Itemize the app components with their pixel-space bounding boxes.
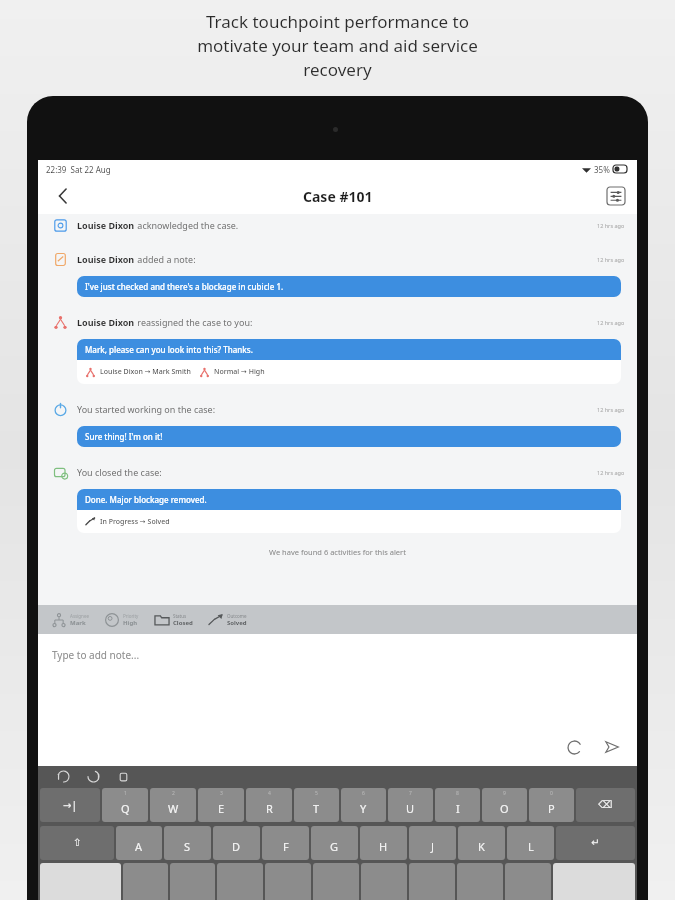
staticText: ↵ (591, 837, 600, 849)
button[interactable]: Mark, please can you look into this? Tha… (77, 339, 621, 384)
button[interactable]: 1 (102, 788, 148, 822)
staticText: 35% (594, 164, 610, 175)
button[interactable]: Sure thing! I'm on it! (77, 426, 621, 447)
staticText: 5 (315, 790, 318, 797)
button[interactable]: 6 (341, 788, 386, 822)
staticText: You closed the case: (77, 466, 162, 478)
staticText: added a note: (135, 253, 196, 265)
button[interactable]: K (458, 826, 505, 860)
staticText: W (168, 801, 179, 816)
staticText: A (135, 839, 143, 854)
staticText: We have found 6 activities for this aler… (38, 547, 637, 557)
button[interactable]: F (262, 826, 309, 860)
button[interactable]: Undo (563, 736, 585, 758)
button[interactable]: D (213, 826, 260, 860)
button[interactable]: L (507, 826, 554, 860)
staticText: Mark, please can you look into this? Tha… (85, 344, 253, 355)
button[interactable] (40, 863, 121, 900)
staticText: 2 (172, 790, 175, 797)
staticText: 12 hrs ago (597, 319, 625, 326)
button[interactable]: Send (601, 736, 623, 758)
staticText: 8 (456, 790, 459, 797)
button[interactable]: Louise Dixon (52, 214, 625, 236)
button[interactable]: 5 (294, 788, 339, 822)
button[interactable]: undo (54, 767, 72, 785)
button[interactable]: H (360, 826, 407, 860)
staticText: Priority (123, 613, 139, 619)
staticText: 3 (220, 790, 223, 797)
staticText: ⇧ (73, 837, 82, 849)
staticText: Closed (173, 619, 193, 627)
button[interactable]: 7 (388, 788, 433, 822)
button[interactable]: 9 (482, 788, 527, 822)
button[interactable]: Back (48, 181, 78, 211)
staticText: 12 hrs ago (597, 469, 625, 476)
staticText: acknowledged the case. (135, 219, 239, 231)
staticText: →| (63, 798, 77, 812)
button[interactable]: Status (153, 611, 193, 628)
staticText: Outcome (227, 613, 247, 619)
staticText: Louise Dixon (77, 253, 135, 265)
button[interactable]: Priority (103, 611, 139, 628)
button[interactable]: ⌫ (576, 788, 635, 822)
button[interactable]: 0 (529, 788, 574, 822)
button[interactable]: A (116, 826, 162, 860)
button[interactable]: clip (114, 767, 132, 785)
staticText: Normal → High (214, 367, 265, 377)
button[interactable]: redo (84, 767, 102, 785)
button[interactable]: Louise Dixon (52, 311, 625, 333)
staticText: In Progress → Solved (100, 517, 170, 527)
button[interactable]: Done. Major blockage removed. (77, 489, 621, 533)
staticText: U (406, 801, 415, 816)
staticText: 4 (268, 790, 271, 797)
button[interactable]: G (311, 826, 358, 860)
staticText: Case #101 (303, 187, 373, 206)
button[interactable]: Filter (605, 185, 627, 207)
staticText: Louise Dixon (77, 316, 135, 328)
button[interactable]: You started working on the case: (52, 398, 625, 420)
button[interactable]: 4 (246, 788, 292, 822)
button[interactable]: Assignee (50, 611, 89, 628)
staticText: You started working on the case: (77, 403, 216, 415)
staticText: 1 (124, 790, 127, 797)
button[interactable]: →| (40, 788, 100, 822)
button[interactable]: Outcome (207, 611, 247, 628)
button[interactable]: I've just checked and there's a blockage… (77, 276, 621, 297)
staticText: D (232, 839, 241, 854)
staticText: Solved (227, 619, 247, 627)
staticText: Q (121, 801, 130, 816)
button[interactable]: ⇧ (40, 826, 114, 860)
staticText: Type to add note... (52, 648, 140, 662)
button[interactable]: J (409, 826, 456, 860)
button[interactable]: ↵ (556, 826, 635, 860)
staticText: Y (360, 801, 367, 816)
staticText: Assignee (70, 613, 89, 619)
staticText: I (456, 801, 460, 816)
staticText: F (283, 839, 289, 854)
staticText: 7 (409, 790, 412, 797)
staticText: I've just checked and there's a blockage… (85, 281, 284, 292)
staticText: O (500, 801, 509, 816)
button[interactable] (553, 863, 635, 900)
button[interactable]: 2 (150, 788, 196, 822)
staticText: Mark (70, 619, 86, 627)
button[interactable]: S (164, 826, 211, 860)
staticText: L (528, 839, 534, 854)
button[interactable]: You closed the case: (52, 461, 625, 483)
button[interactable]: Louise Dixon (52, 248, 625, 270)
staticText: 12 hrs ago (597, 256, 625, 263)
staticText: E (218, 801, 225, 816)
staticText: R (266, 801, 273, 816)
button[interactable]: 8 (435, 788, 480, 822)
staticText: Track touchpoint performance to motivate… (197, 10, 478, 81)
button[interactable]: 3 (198, 788, 244, 822)
